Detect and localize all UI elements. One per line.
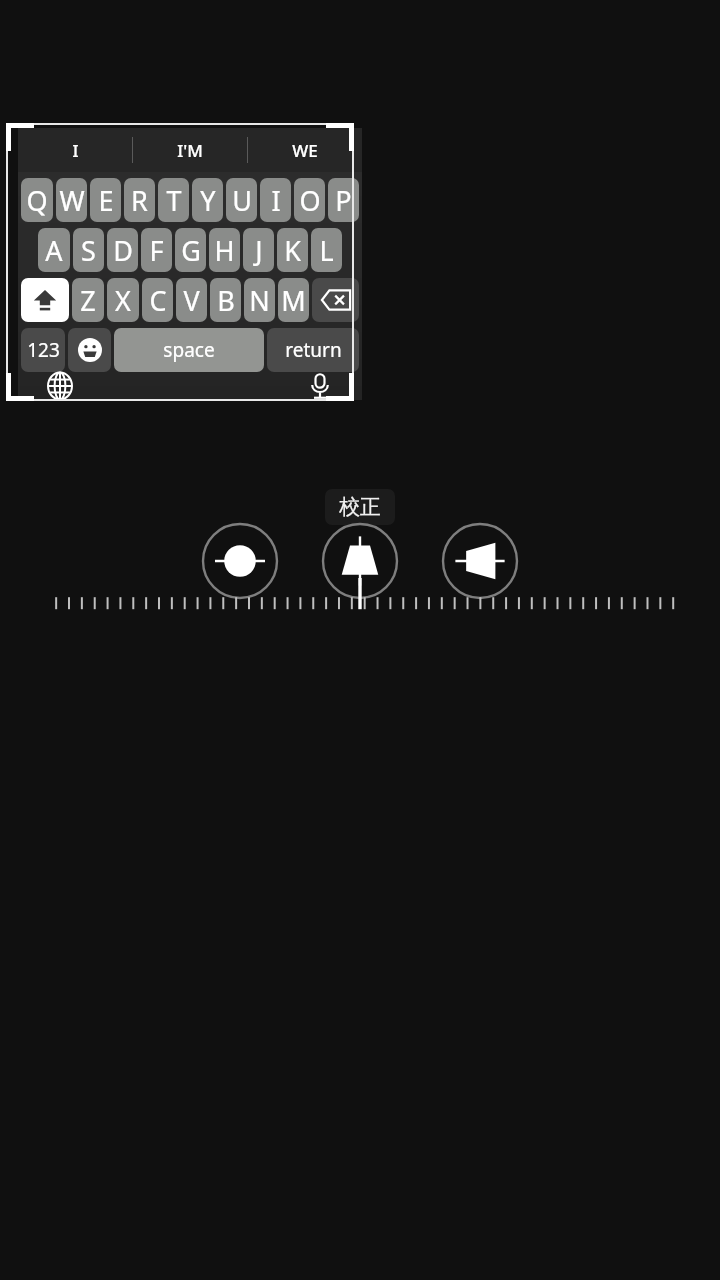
staticText: 123 [27,337,60,363]
button[interactable]: V [176,278,207,322]
staticText: V [183,282,200,319]
staticText: 校正 [339,494,381,520]
button[interactable]: A [38,228,70,272]
button[interactable]: I'M [133,128,247,172]
button[interactable]: return [267,328,359,372]
button[interactable]: 123 [21,328,65,372]
button[interactable]: P [328,178,359,222]
button[interactable]: F [141,228,172,272]
button[interactable]: D [107,228,138,272]
button[interactable]: B [210,278,241,322]
staticText: Q [26,182,48,219]
button[interactable]: E [90,178,121,222]
button[interactable]: T [158,178,189,222]
staticText: P [335,182,352,219]
staticText: X [115,282,131,319]
staticText: I'M [177,139,203,162]
staticText: I [72,139,79,162]
button[interactable]: O [294,178,325,222]
staticText: G [181,232,201,269]
staticText: B [217,282,235,319]
staticText: A [45,232,63,269]
button[interactable]: G [175,228,206,272]
staticText: return [285,337,342,363]
button[interactable]: Voice input [298,372,342,400]
staticText: M [281,282,306,319]
button[interactable]: U [226,178,257,222]
staticText: H [214,232,235,269]
staticText: Y [200,182,216,219]
staticText: L [319,232,334,269]
staticText: T [166,182,182,219]
button[interactable]: M [278,278,309,322]
button[interactable]: C [142,278,173,322]
staticText: space [163,337,215,363]
button[interactable]: S [73,228,104,272]
staticText: D [113,232,133,269]
button[interactable]: Lens tilt [200,521,280,601]
staticText: E [98,182,114,219]
button[interactable]: I [260,178,291,222]
staticText: K [284,232,301,269]
button[interactable]: 校正 [325,489,395,525]
button[interactable]: X [107,278,139,322]
button[interactable]: L [311,228,342,272]
staticText: U [232,182,252,219]
button[interactable]: Shift [21,278,69,322]
button[interactable]: N [244,278,275,322]
button[interactable]: Backspace [312,278,359,322]
staticText: I [271,182,281,219]
button[interactable]: Z [72,278,104,322]
staticText: W [59,182,85,219]
button[interactable]: Emoji [68,328,111,372]
button[interactable]: W [56,178,87,222]
staticText: S [81,232,96,269]
button[interactable]: J [243,228,274,272]
button[interactable]: space [114,328,264,372]
button[interactable]: Adjustment slider [0,578,720,618]
staticText: F [149,232,164,269]
button[interactable]: Change keyboard language [38,372,82,400]
staticText: WE [292,139,318,162]
button[interactable]: Q [21,178,53,222]
button[interactable]: K [277,228,308,272]
staticText: Z [80,282,96,319]
button[interactable]: Y [192,178,223,222]
staticText: O [299,182,321,219]
button[interactable]: I [18,128,132,172]
button[interactable]: H [209,228,240,272]
staticText: R [131,182,148,219]
staticText: C [149,282,167,319]
button[interactable]: Rotate [440,521,520,601]
button[interactable]: Shift [320,521,400,601]
button[interactable]: R [124,178,155,222]
button[interactable]: WE [248,128,362,172]
staticText: J [255,232,263,269]
staticText: N [249,282,270,319]
